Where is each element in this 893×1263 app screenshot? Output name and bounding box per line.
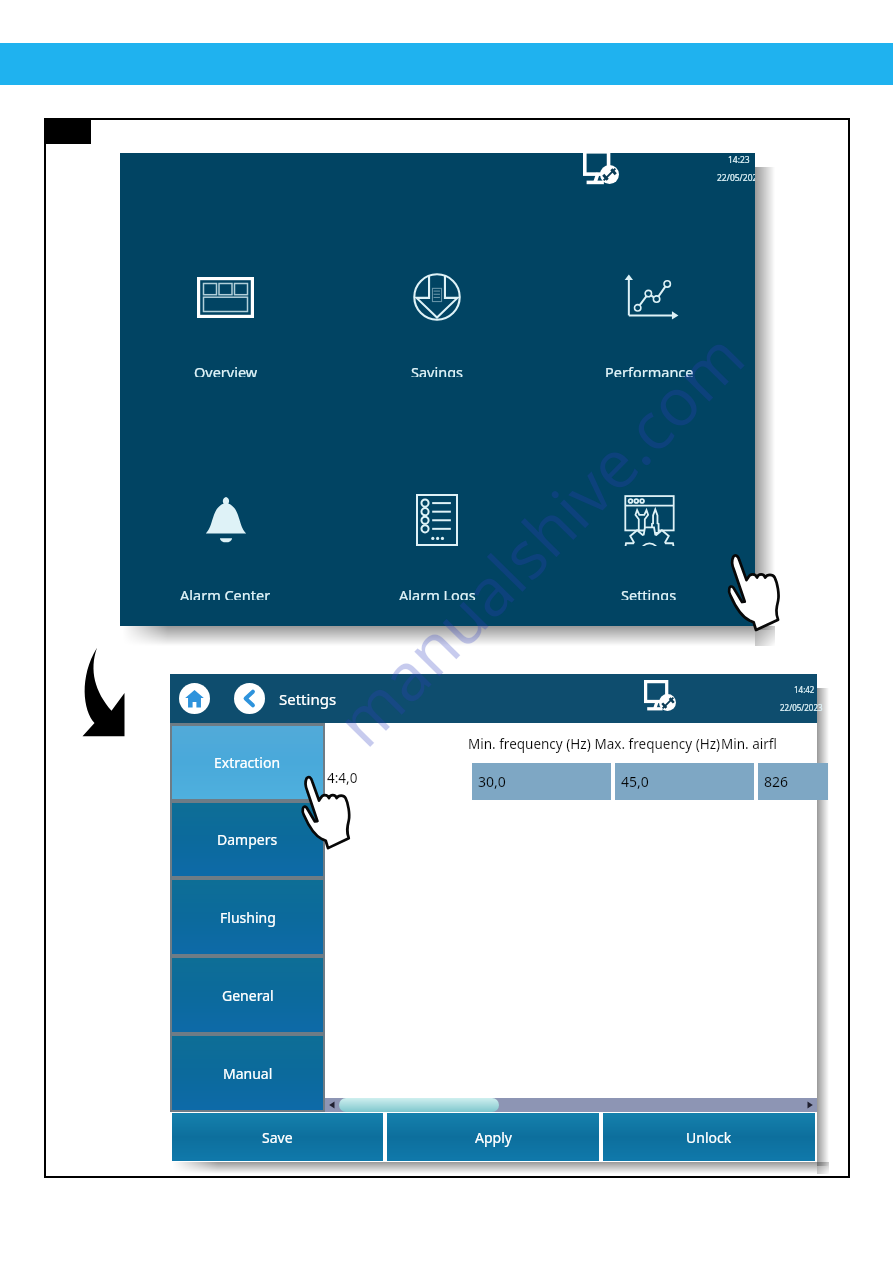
staticText: General [222,986,274,1005]
staticText: 45,0 [621,772,649,791]
button[interactable]: General [172,958,323,1032]
button[interactable]: Manual [172,1036,323,1110]
staticText: Alarm Center [180,585,271,600]
button[interactable]: Extraction [172,726,323,799]
staticText: 4:4,0 [327,769,358,787]
staticText: Overview [194,362,258,377]
staticText: Extraction [214,753,281,772]
staticText: Apply [475,1128,512,1147]
button[interactable]: Alarm Center [120,490,331,600]
staticText: Min. frequency (Hz) [468,735,591,753]
staticText: Manual [223,1064,273,1083]
staticText: Settings [279,689,337,709]
button[interactable]: Dampers [172,803,323,876]
staticText: 826 [764,772,789,791]
staticText: Flushing [220,908,276,927]
staticText: manualshive.com [316,312,762,764]
button[interactable]: Back [234,683,265,714]
button[interactable]: Performance [543,267,755,377]
staticText: Dampers [217,830,278,849]
button[interactable]: Save [172,1113,383,1161]
staticText: Alarm Logs [399,585,476,600]
button[interactable]: Alarm Logs [331,490,543,600]
staticText: 30,0 [478,772,506,791]
button[interactable]: Settings [543,490,755,600]
button[interactable]: Overview [120,267,331,377]
staticText: 22/05/2023 [780,702,823,713]
button[interactable]: Flushing [172,880,323,954]
staticText: Savings [411,362,464,377]
staticText: 14:23 [728,154,750,166]
staticText: Min. airfl [721,735,777,753]
button[interactable]: Unlock [603,1113,815,1161]
staticText: Settings [621,585,677,600]
staticText: Performance [605,362,694,377]
staticText: Unlock [686,1128,732,1147]
button[interactable]: Home [179,683,210,714]
staticText: Max. frequency (Hz) [591,735,721,753]
button[interactable]: Savings [331,267,543,377]
staticText: Save [262,1128,293,1147]
staticText: 14:42 [794,684,815,695]
button[interactable]: Apply [387,1113,599,1161]
staticText: 22/05/2023 [717,172,755,184]
